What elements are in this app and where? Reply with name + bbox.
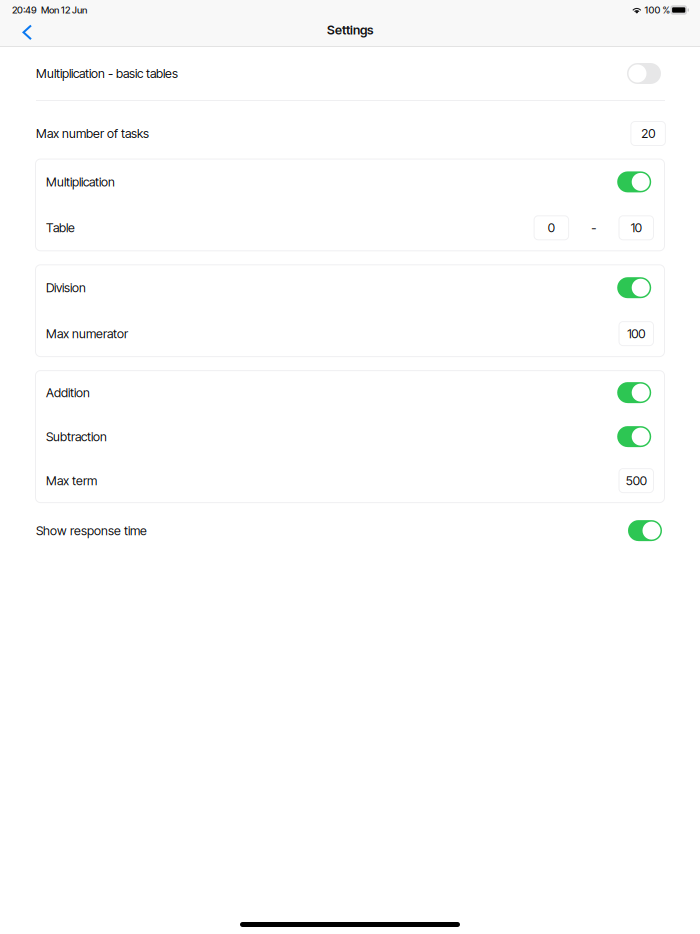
button[interactable]: Addition [35, 371, 664, 415]
staticText: Table [46, 220, 75, 235]
staticText: 0 [548, 220, 555, 235]
button[interactable]: 20 [631, 121, 665, 145]
staticText: Multiplication - basic tables [36, 66, 178, 81]
staticText: Addition [46, 385, 90, 400]
staticText: - [591, 220, 596, 235]
button[interactable]: Subtraction [35, 415, 664, 459]
staticText: 20 [641, 126, 655, 141]
button[interactable]: Show response time [0, 503, 700, 559]
staticText: 20:49 [12, 4, 37, 16]
button[interactable]: Back [13, 20, 41, 45]
button[interactable]: 10 [619, 216, 653, 240]
button[interactable]: Multiplication - basic tables [0, 47, 700, 100]
staticText: Settings [327, 22, 373, 38]
staticText: Max numerator [46, 326, 128, 341]
staticText: Subtraction [46, 429, 107, 444]
staticText: Max term [46, 473, 97, 488]
button[interactable]: Multiplication [35, 159, 664, 205]
staticText: 100 [627, 326, 645, 341]
button[interactable]: 0 [534, 216, 569, 240]
staticText: 10 [631, 220, 642, 235]
staticText: Max number of tasks [36, 126, 149, 141]
button[interactable]: Division [35, 265, 664, 311]
button[interactable]: 500 [619, 469, 653, 493]
staticText: 100 % [642, 4, 670, 16]
staticText: Division [46, 280, 86, 295]
staticText: Multiplication [46, 174, 115, 189]
staticText: 500 [626, 473, 647, 488]
staticText: Show response time [36, 523, 147, 538]
staticText: Mon 12 Jun [37, 4, 87, 16]
button[interactable]: 100 [619, 322, 653, 346]
